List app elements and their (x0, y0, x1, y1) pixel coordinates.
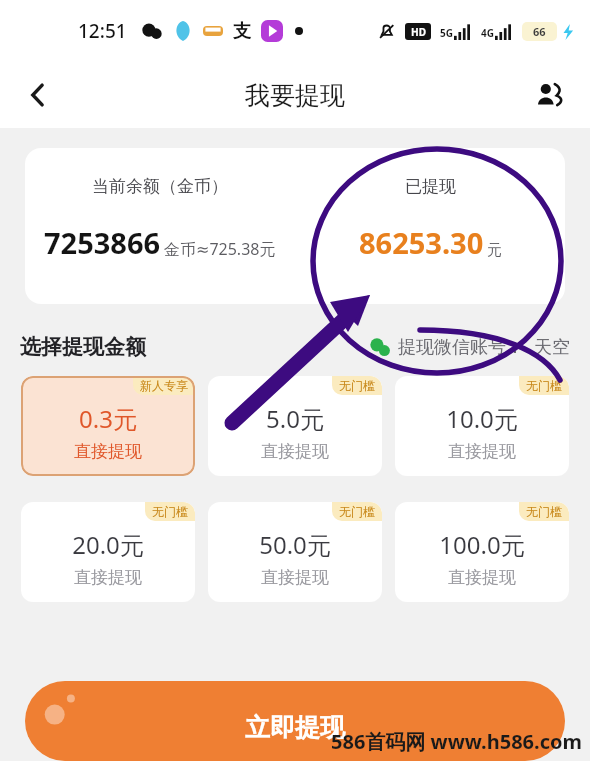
staticText: 直接提现 (448, 441, 516, 462)
button[interactable]: 无门槛 (395, 376, 569, 476)
button[interactable]: 无门槛 (21, 502, 195, 602)
staticText: 5.0元 (266, 402, 324, 435)
staticText: 0.3元 (79, 402, 137, 435)
staticText: 100.0元 (439, 528, 525, 561)
button[interactable]: 无门槛 (395, 502, 569, 602)
staticText: HD (411, 25, 426, 39)
staticText: 无门槛 (152, 504, 188, 519)
staticText: 50.0元 (259, 528, 331, 561)
staticText: 元 (487, 241, 502, 260)
button[interactable]: Back (14, 71, 62, 119)
staticText: 直接提现 (448, 567, 516, 588)
staticText: 直接提现 (74, 567, 142, 588)
staticText: 立即提现 (245, 712, 345, 743)
staticText: 66 (533, 24, 546, 39)
staticText: 无门槛 (526, 378, 562, 393)
staticText: 7253866 (44, 223, 161, 262)
staticText: 4G (481, 26, 494, 40)
staticText: 20.0元 (72, 528, 144, 561)
staticText: 提现微信账号： (398, 336, 524, 359)
staticText: 无门槛 (526, 504, 562, 519)
button[interactable]: 新人专享 (21, 376, 195, 476)
staticText: 12:51 (78, 18, 127, 44)
button[interactable]: 立即提现 (25, 681, 565, 761)
button[interactable]: 无门槛 (208, 502, 382, 602)
staticText: 586首码网 www.h586.com (331, 728, 582, 755)
staticText: 10.0元 (446, 402, 518, 435)
staticText: 已提现 (405, 176, 456, 197)
staticText: 支 (233, 20, 251, 43)
staticText: 天空 (534, 336, 570, 359)
staticText: 直接提现 (74, 441, 142, 462)
staticText: 新人专享 (140, 378, 188, 393)
staticText: 金币≈725.38元 (164, 238, 276, 260)
staticText: 无门槛 (339, 378, 375, 393)
button[interactable]: Account (526, 71, 574, 119)
button[interactable]: 当前余额（金币） (25, 148, 565, 304)
staticText: 无门槛 (339, 504, 375, 519)
staticText: 我要提现 (245, 80, 345, 111)
button[interactable]: 无门槛 (208, 376, 382, 476)
staticText: 5G (440, 26, 453, 40)
staticText: 直接提现 (261, 441, 329, 462)
staticText: 选择提现金额 (20, 334, 146, 360)
staticText: 直接提现 (261, 567, 329, 588)
staticText: 86253.30 (359, 223, 484, 262)
staticText: 当前余额（金币） (92, 176, 228, 197)
